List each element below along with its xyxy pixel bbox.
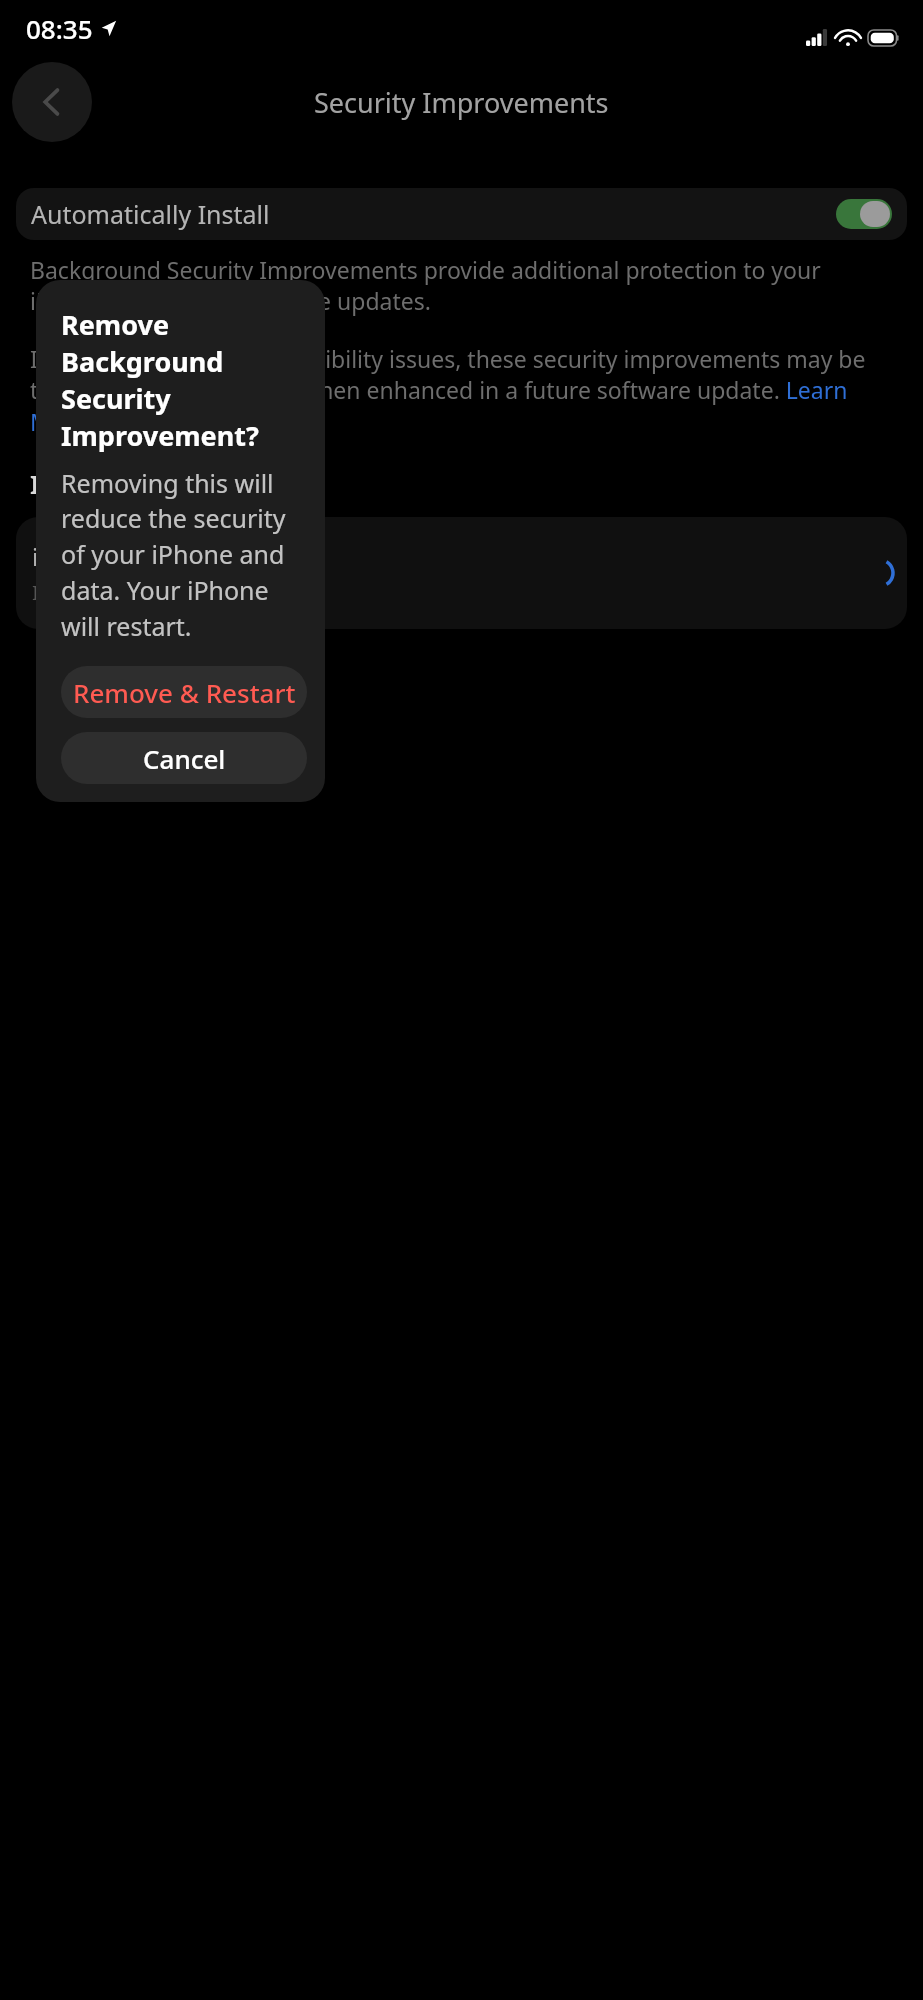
button[interactable]: Back (12, 62, 92, 142)
staticText: Remove Background Security Improvement? (61, 306, 307, 454)
button[interactable]: iOS Security Response (16, 517, 907, 629)
button[interactable]: Cancel (61, 732, 307, 784)
staticText: Security Improvements (314, 84, 609, 121)
staticText: 08:35 (26, 11, 93, 46)
button[interactable]: Automatically Install (16, 188, 907, 240)
staticText: In rare instances of compatibility issue… (30, 343, 893, 438)
staticText: Cancel (143, 741, 226, 776)
staticText: Automatically Install (31, 197, 270, 231)
button[interactable]: Automatically Install toggle (836, 199, 892, 229)
staticText: Background Security Improvements provide… (30, 254, 893, 317)
staticText: iOS Security Response (32, 540, 282, 573)
staticText: Installed (30, 466, 141, 501)
staticText: Installed (32, 579, 114, 606)
staticText: Removing this will reduce the security o… (61, 466, 307, 644)
staticText: Remove & Restart (73, 675, 296, 710)
button[interactable]: Remove & Restart (61, 666, 307, 718)
